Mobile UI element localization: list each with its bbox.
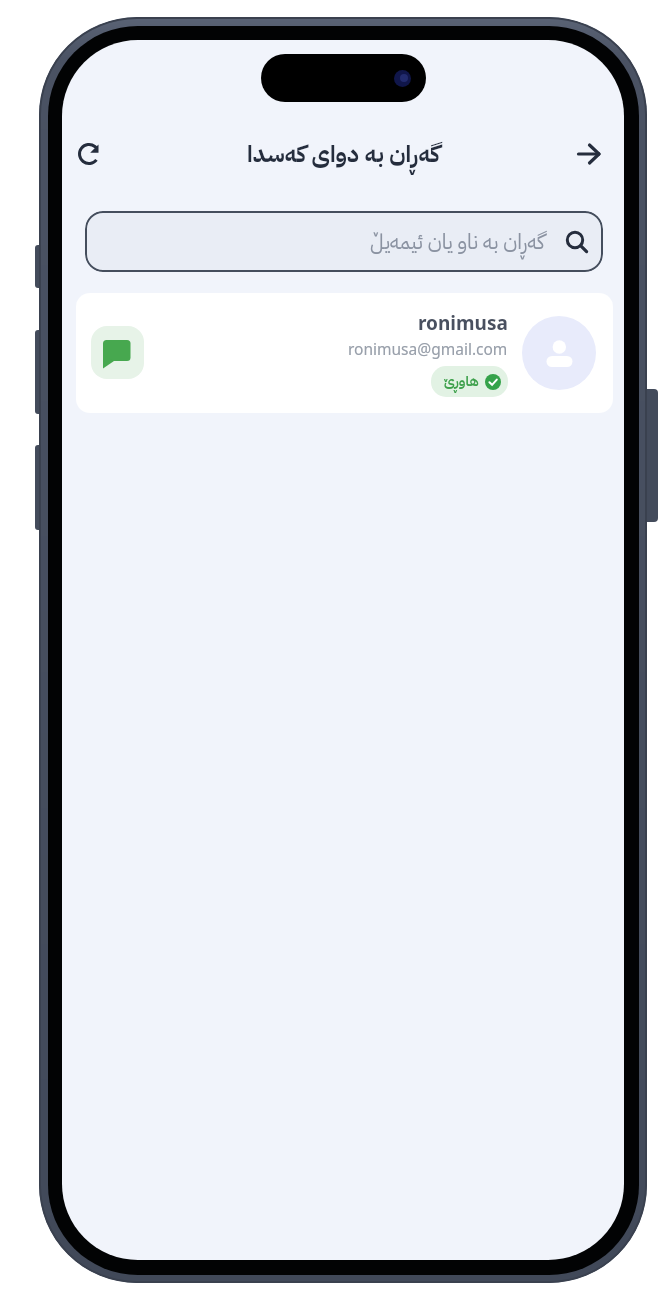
staticText: ronimusa	[418, 310, 508, 336]
button[interactable]: گەڕان بە ناو یان ئیمەیڵ	[85, 211, 603, 272]
button[interactable]	[572, 137, 606, 171]
staticText: ronimusa@gmail.com	[348, 338, 508, 359]
button[interactable]: ronimusa	[76, 293, 613, 413]
staticText: گەڕان بە ناو یان ئیمەیڵ	[370, 226, 545, 258]
staticText: گەڕان بە دوای کەسدا	[247, 137, 440, 172]
button[interactable]	[72, 137, 106, 171]
button[interactable]	[91, 326, 144, 379]
staticText: هاوڕێ	[444, 371, 479, 392]
button[interactable]: هاوڕێ	[431, 366, 508, 397]
